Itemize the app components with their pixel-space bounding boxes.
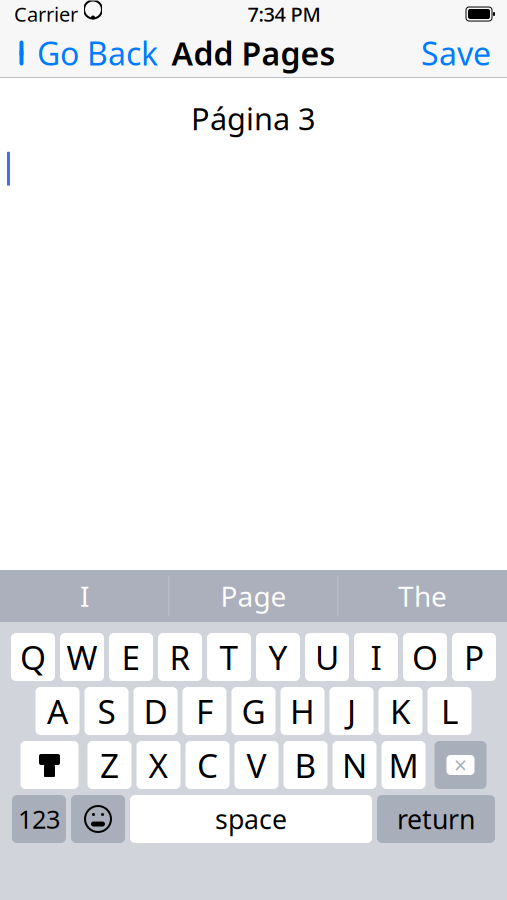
button[interactable]: T <box>207 633 251 681</box>
staticText: E <box>121 635 140 679</box>
staticText: Page <box>220 577 286 615</box>
button[interactable]: Save <box>421 26 507 80</box>
staticText: I <box>370 635 381 679</box>
staticText: X <box>148 743 168 787</box>
button[interactable]: G <box>231 687 275 735</box>
button[interactable]: The <box>338 570 506 622</box>
button[interactable]: space <box>130 795 372 843</box>
staticText: 123 <box>18 802 60 836</box>
button[interactable]: P <box>452 633 496 681</box>
button[interactable]: U <box>305 633 349 681</box>
staticText: T <box>219 635 238 679</box>
staticText: J <box>347 689 356 733</box>
button[interactable]: I <box>0 570 168 622</box>
staticText: The <box>398 577 447 615</box>
staticText: × <box>454 750 467 780</box>
button[interactable]: Go Back <box>0 26 158 80</box>
staticText: D <box>143 689 167 733</box>
button[interactable]: D <box>133 687 177 735</box>
button[interactable]: 123 <box>12 795 66 843</box>
button[interactable]: R <box>158 633 202 681</box>
button[interactable]: W <box>60 633 104 681</box>
staticText: W <box>66 635 97 679</box>
button[interactable]: L <box>427 687 471 735</box>
button[interactable]: F <box>182 687 226 735</box>
staticText: C <box>197 743 218 787</box>
button[interactable]: Y <box>256 633 300 681</box>
staticText: K <box>390 689 411 733</box>
button[interactable]: B <box>283 741 327 789</box>
button[interactable]: N <box>332 741 376 789</box>
staticText: L <box>441 689 458 733</box>
staticText: Save <box>421 32 491 74</box>
staticText: F <box>196 689 213 733</box>
staticText: 7:34 PM <box>247 1 320 27</box>
staticText: Y <box>268 635 287 679</box>
staticText: Z <box>100 743 119 787</box>
staticText: Go Back <box>37 32 158 74</box>
button[interactable]: return <box>377 795 495 843</box>
staticText: Add Pages <box>171 32 335 74</box>
staticText: return <box>397 801 475 837</box>
button[interactable]: Z <box>87 741 131 789</box>
button[interactable]: O <box>403 633 447 681</box>
button[interactable]: Delete <box>434 741 486 789</box>
button[interactable]: H <box>280 687 324 735</box>
staticText: N <box>342 743 367 787</box>
button[interactable]: Emoji <box>71 795 125 843</box>
staticText: G <box>241 689 265 733</box>
staticText: B <box>294 743 316 787</box>
button[interactable]: M <box>381 741 425 789</box>
staticText: Carrier <box>14 1 78 27</box>
staticText: V <box>246 743 266 787</box>
staticText: S <box>97 689 115 733</box>
staticText: O <box>412 635 438 679</box>
staticText: H <box>290 689 315 733</box>
button[interactable]: Page <box>169 570 337 622</box>
staticText: M <box>388 743 418 787</box>
button[interactable]: A <box>35 687 79 735</box>
button[interactable]: K <box>378 687 422 735</box>
button[interactable]: X <box>136 741 180 789</box>
button[interactable]: S <box>84 687 128 735</box>
staticText: I <box>80 577 89 615</box>
button[interactable]: C <box>185 741 229 789</box>
button[interactable]: J <box>329 687 373 735</box>
staticText: Página 3 <box>191 98 316 139</box>
staticText: U <box>315 635 339 679</box>
button[interactable]: V <box>234 741 278 789</box>
staticText: Q <box>20 635 46 679</box>
button[interactable]: I <box>354 633 398 681</box>
staticText: space <box>215 801 287 837</box>
button[interactable]: Q <box>11 633 55 681</box>
button[interactable]: E <box>109 633 153 681</box>
staticText: P <box>464 635 484 679</box>
button[interactable]: Shift <box>20 741 78 789</box>
staticText: A <box>47 689 68 733</box>
staticText: R <box>169 635 190 679</box>
